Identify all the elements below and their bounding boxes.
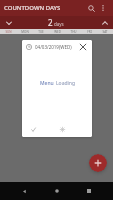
staticText: 04/03/2019(WED) bbox=[35, 44, 72, 50]
staticText: days bbox=[54, 21, 64, 27]
button[interactable]: Close bbox=[78, 42, 88, 52]
staticText: THU bbox=[70, 30, 77, 34]
button[interactable]: Menu bbox=[40, 80, 75, 87]
staticText: WED bbox=[54, 30, 61, 34]
button[interactable]: Collapse bbox=[99, 17, 110, 28]
button[interactable]: Recent apps bbox=[81, 183, 97, 199]
button[interactable]: More options bbox=[97, 2, 109, 14]
staticText: MON bbox=[21, 30, 29, 34]
staticText: Menu bbox=[40, 80, 54, 87]
button[interactable]: Confirm bbox=[28, 124, 39, 135]
button[interactable]: Settings bbox=[57, 124, 68, 135]
button[interactable]: Search bbox=[85, 2, 97, 14]
staticText: COUNTDOWN DAYS bbox=[4, 4, 61, 12]
staticText: Loading bbox=[56, 80, 75, 87]
staticText: FRI bbox=[87, 30, 92, 34]
button[interactable]: Back bbox=[16, 183, 32, 199]
button[interactable]: Expand bbox=[3, 17, 14, 28]
staticText: TUE bbox=[38, 30, 44, 34]
staticText: SUN bbox=[5, 30, 12, 34]
staticText: 2 bbox=[48, 17, 53, 28]
button[interactable]: Home bbox=[49, 183, 65, 199]
button[interactable]: Add event bbox=[89, 154, 107, 172]
staticText: SAT bbox=[102, 30, 108, 34]
